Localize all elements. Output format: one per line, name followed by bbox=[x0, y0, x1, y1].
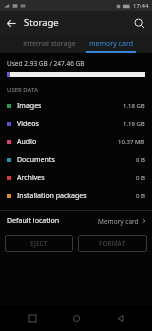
button[interactable]: Home bbox=[64, 306, 88, 330]
button[interactable]: EJECT bbox=[5, 235, 73, 252]
staticText: FORMAT bbox=[99, 239, 126, 248]
button[interactable]: memory card bbox=[80, 34, 142, 53]
button[interactable]: Archives bbox=[0, 169, 152, 187]
button[interactable]: Back bbox=[108, 306, 132, 330]
staticText: internal storage bbox=[23, 39, 76, 49]
staticText: 1.19 GB bbox=[123, 120, 145, 128]
staticText: Used 2.93 GB / 247.46 GB bbox=[7, 59, 85, 68]
button[interactable]: Back bbox=[0, 12, 22, 34]
staticText: Audio bbox=[17, 137, 118, 147]
button[interactable]: Recent apps bbox=[20, 306, 44, 330]
staticText: Archives bbox=[17, 173, 136, 183]
button[interactable]: Default location bbox=[0, 211, 152, 231]
staticText: Storage bbox=[24, 16, 59, 29]
staticText: Documents bbox=[17, 155, 136, 165]
staticText: Images bbox=[17, 101, 123, 111]
button[interactable]: FORMAT bbox=[78, 235, 147, 252]
staticText: Videos bbox=[17, 119, 123, 129]
staticText: memory card bbox=[89, 39, 133, 49]
staticText: Installation packages bbox=[17, 191, 136, 201]
button[interactable]: Videos bbox=[0, 115, 152, 133]
staticText: 0 B bbox=[136, 156, 145, 164]
button[interactable]: internal storage bbox=[18, 34, 80, 53]
staticText: 17:44 bbox=[133, 2, 149, 10]
staticText: Memory card bbox=[98, 217, 139, 226]
staticText: 10.37 MB bbox=[118, 138, 145, 146]
button[interactable]: Images bbox=[0, 97, 152, 115]
staticText: USER DATA bbox=[7, 86, 38, 94]
button[interactable]: Audio bbox=[0, 133, 152, 151]
button[interactable]: Installation packages bbox=[0, 187, 152, 205]
staticText: Default location bbox=[7, 216, 98, 226]
staticText: 1.18 GB bbox=[123, 102, 145, 110]
staticText: EJECT bbox=[30, 239, 48, 248]
button[interactable]: Search bbox=[129, 13, 149, 33]
button[interactable]: Documents bbox=[0, 151, 152, 169]
staticText: 0 B bbox=[136, 174, 145, 182]
staticText: 0 B bbox=[136, 192, 145, 200]
